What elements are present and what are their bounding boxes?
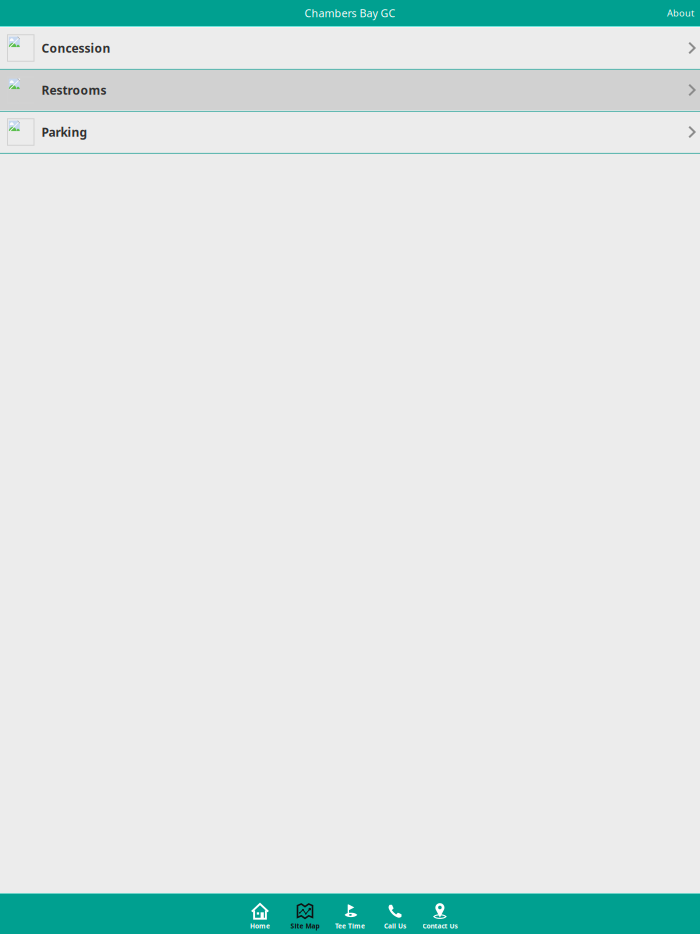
button[interactable]: Tee Time [327,894,372,934]
staticText: Chambers Bay GC [304,6,395,20]
staticText: Tee Time [335,921,365,930]
staticText: Home [250,921,270,930]
staticText: Parking [41,124,87,140]
staticText: Site Map [290,921,319,930]
button[interactable]: Call Us [372,894,417,934]
staticText: Call Us [384,921,406,930]
button[interactable]: About [657,2,700,24]
button[interactable]: Restrooms [0,70,700,112]
button[interactable]: Contact Us [417,894,462,934]
button[interactable]: Concession [0,28,700,70]
staticText: About [667,7,694,19]
button[interactable]: Site Map [282,894,327,934]
staticText: Concession [41,40,110,56]
button[interactable]: Home [237,894,282,934]
staticText: Contact Us [422,921,457,930]
button[interactable]: Parking [0,112,700,154]
staticText: Restrooms [41,82,106,98]
